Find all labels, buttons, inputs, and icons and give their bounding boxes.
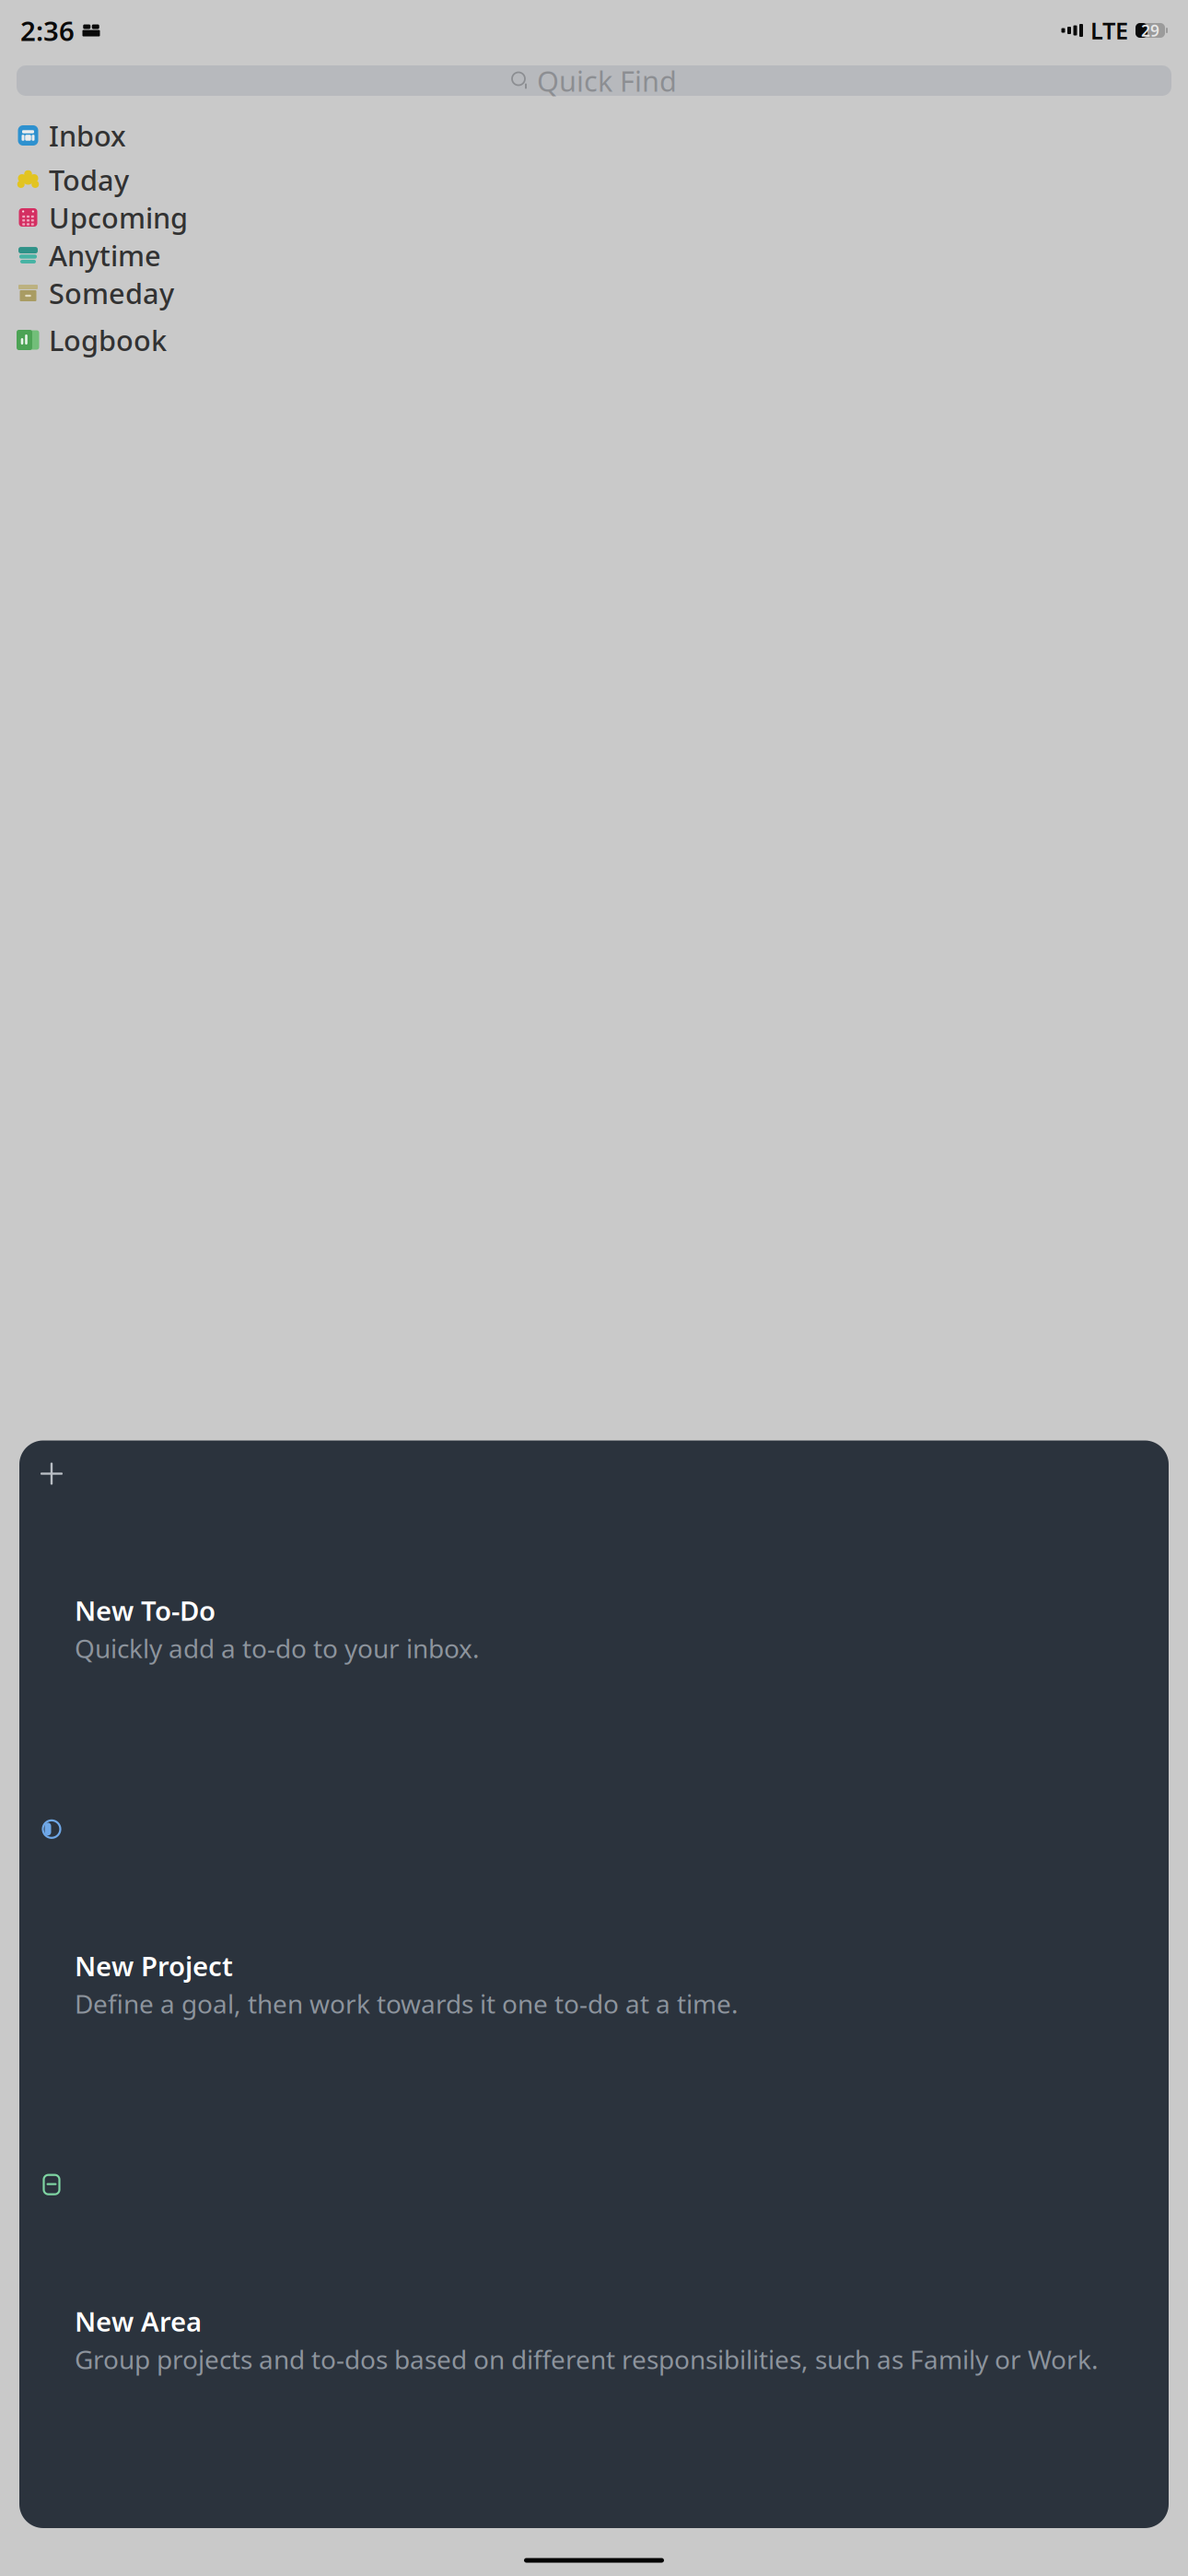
button[interactable]: New To-Do [40, 1461, 1148, 1797]
button[interactable]: Quick Find [17, 65, 1171, 96]
button[interactable]: New Project [40, 1816, 1148, 2152]
button[interactable]: Someday [0, 280, 1188, 306]
staticText: Group projects and to-dos based on diffe… [75, 2342, 1099, 2376]
button[interactable]: Logbook [0, 327, 1188, 353]
staticText: Today [49, 161, 129, 198]
staticText: New To-Do [75, 1592, 215, 1628]
staticText: Upcoming [49, 199, 188, 236]
staticText: Logbook [49, 321, 167, 359]
staticText: Quick Find [537, 62, 677, 99]
button[interactable]: Upcoming [0, 205, 1188, 230]
staticText: LTE [1090, 15, 1128, 46]
button[interactable]: Inbox [0, 123, 1188, 148]
staticText: New Area [75, 2303, 202, 2339]
staticText: Quickly add a to-do to your inbox. [75, 1631, 480, 1665]
staticText: 29 [1141, 20, 1159, 41]
staticText: New Project [75, 1948, 233, 1984]
button[interactable]: New Area [40, 2172, 1148, 2508]
staticText: 2:36 [20, 12, 75, 48]
staticText: Define a goal, then work towards it one … [75, 1986, 739, 2021]
button[interactable]: Today [0, 167, 1188, 193]
staticText: Inbox [49, 117, 126, 154]
staticText: Someday [49, 274, 174, 312]
staticText: Anytime [49, 236, 161, 274]
button[interactable]: Anytime [0, 242, 1188, 268]
